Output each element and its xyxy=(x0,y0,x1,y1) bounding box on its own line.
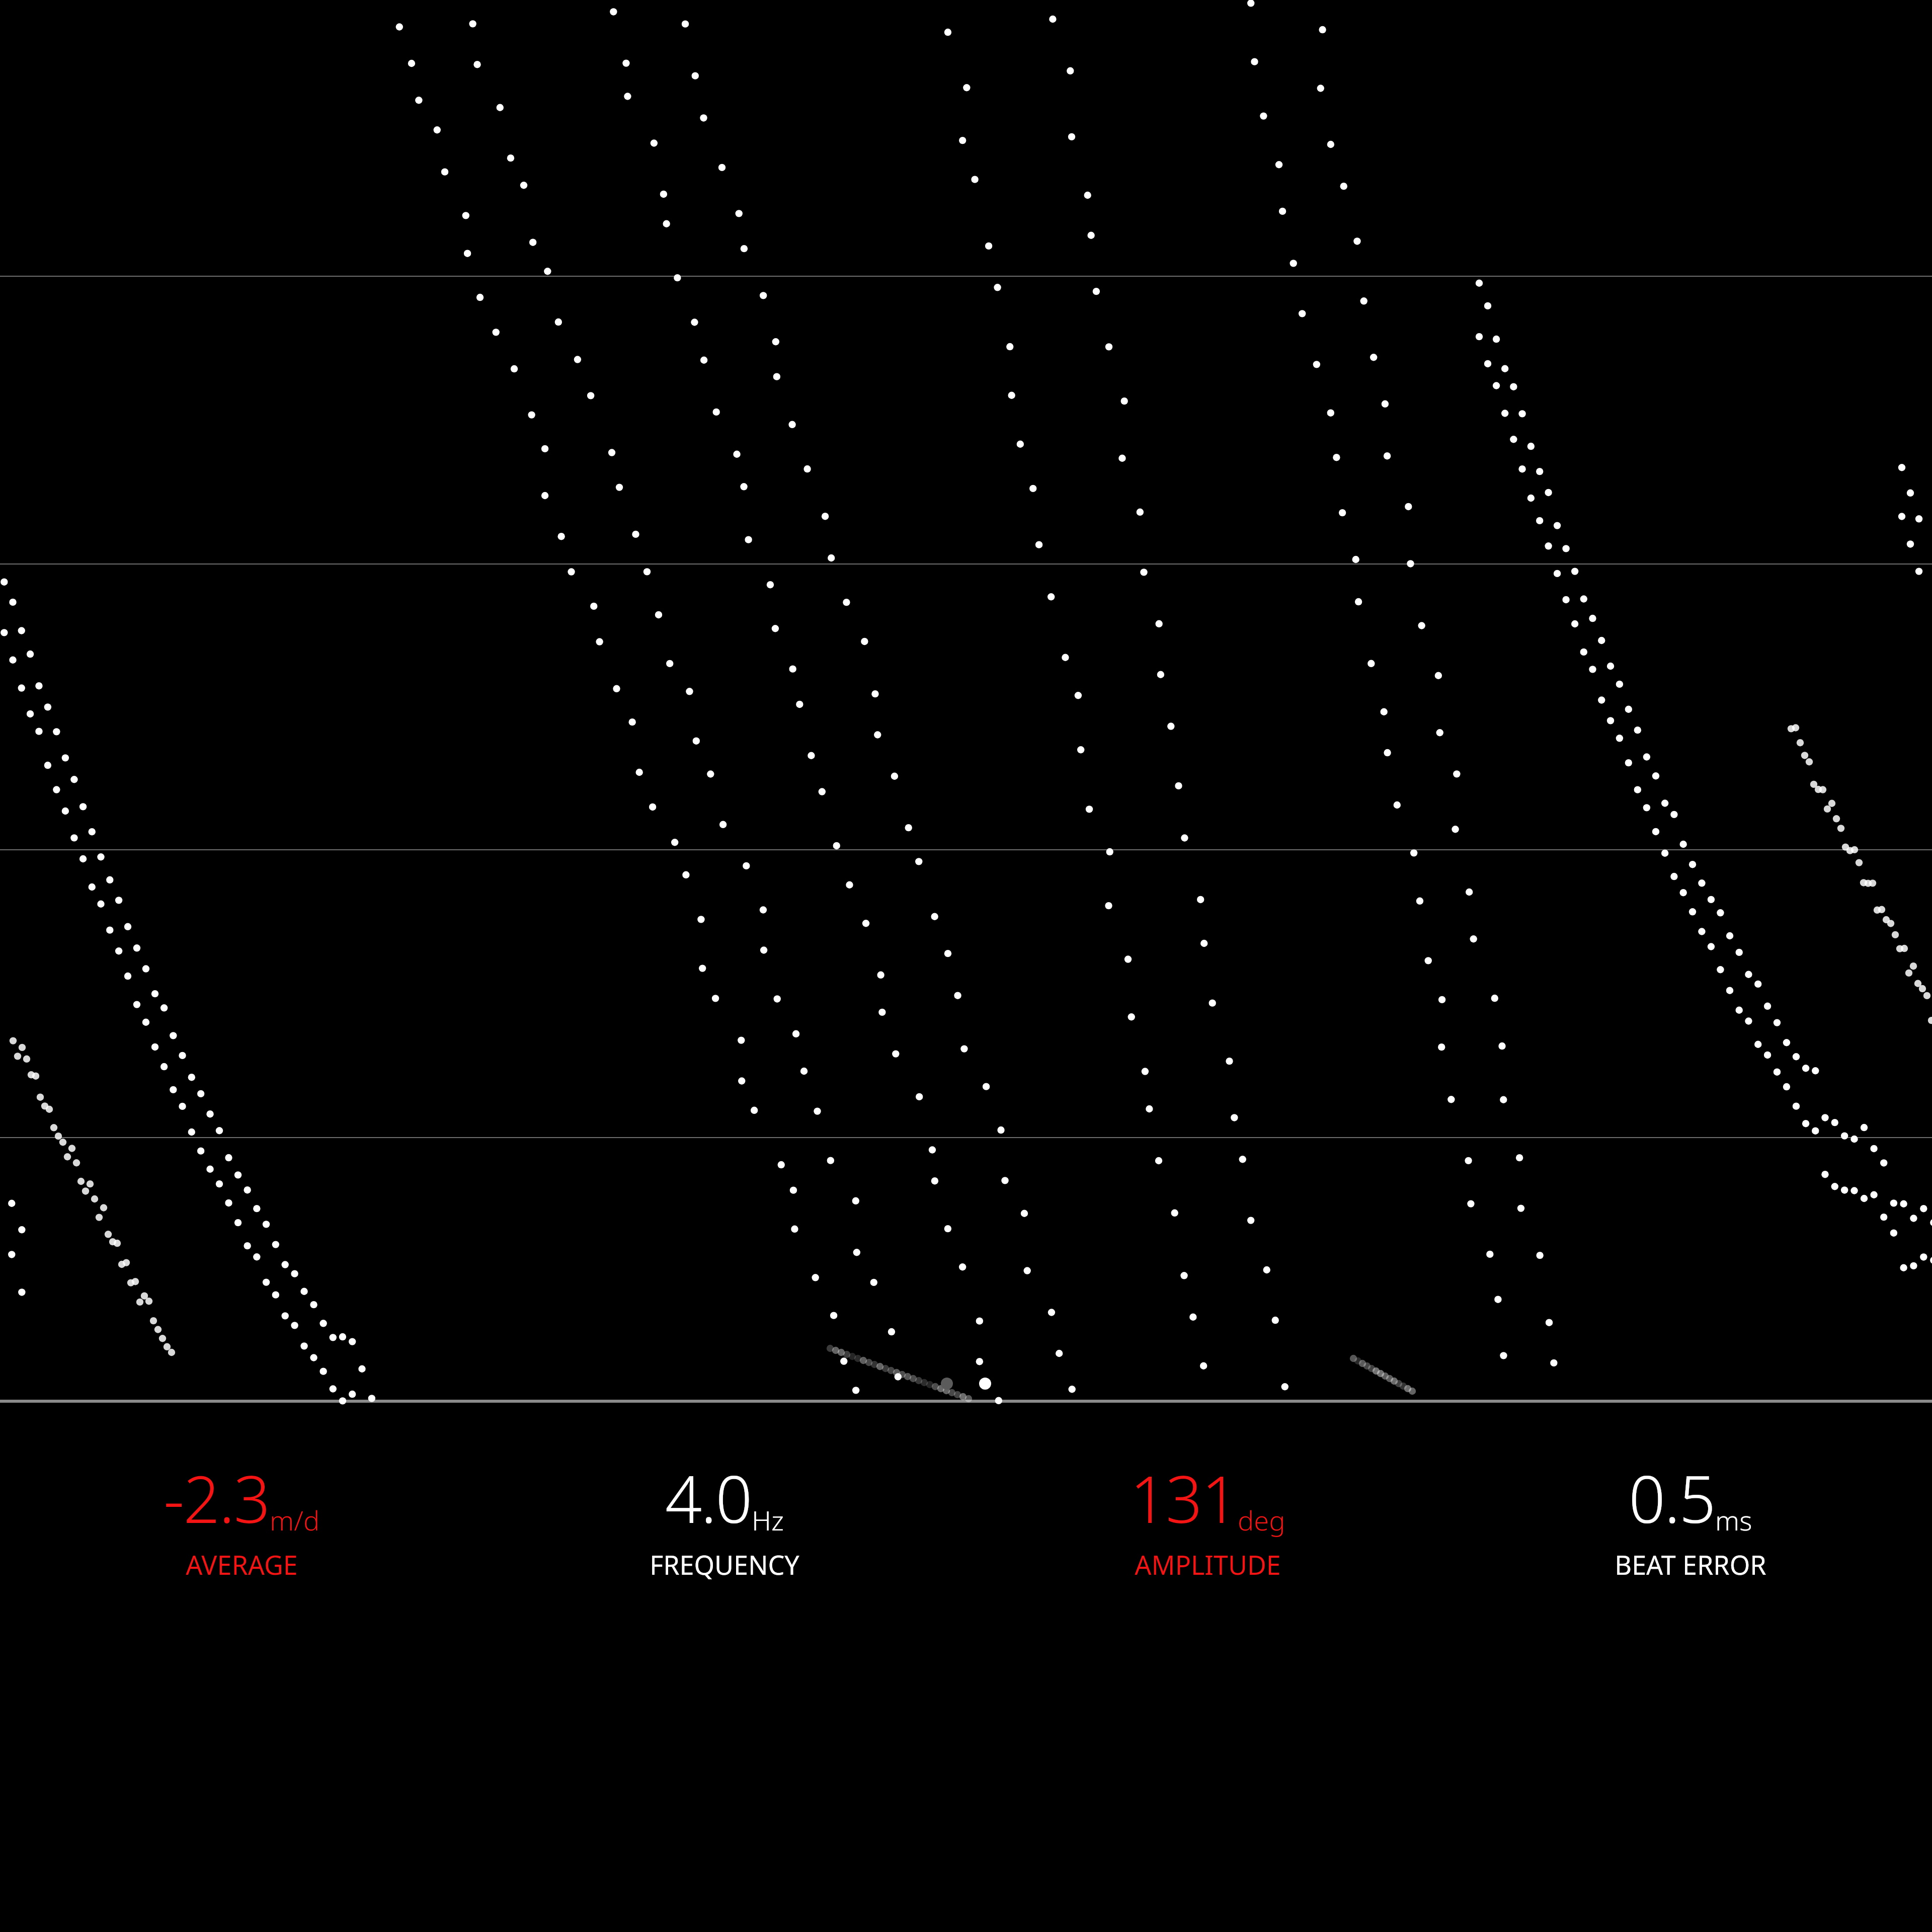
staticText: -2.3 xyxy=(164,1454,270,1542)
staticText: deg xyxy=(1238,1501,1285,1539)
button[interactable]: 131 xyxy=(966,1454,1449,1582)
staticText: 4.0 xyxy=(665,1454,752,1542)
staticText: FREQUENCY xyxy=(650,1547,799,1582)
staticText: 0.5 xyxy=(1629,1454,1715,1542)
button[interactable]: 0.5 xyxy=(1449,1454,1932,1582)
staticText: AMPLITUDE xyxy=(1135,1547,1281,1582)
button[interactable]: Page 1 xyxy=(941,1378,953,1390)
button[interactable]: -2.3 xyxy=(0,1454,483,1582)
button[interactable]: 4.0 xyxy=(483,1454,966,1582)
staticText: AVERAGE xyxy=(186,1547,298,1582)
button[interactable]: Rate trace graph xyxy=(0,0,1932,1404)
staticText: Hz xyxy=(752,1501,784,1539)
staticText: BEAT ERROR xyxy=(1615,1547,1766,1582)
staticText: ms xyxy=(1715,1501,1752,1539)
button[interactable]: Page 2 xyxy=(979,1378,991,1390)
staticText: 131 xyxy=(1130,1454,1238,1542)
staticText: m/d xyxy=(270,1501,320,1539)
